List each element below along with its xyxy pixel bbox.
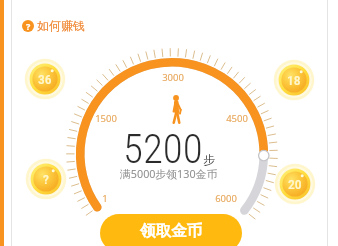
staticText: 20: [288, 176, 302, 192]
staticText: 满5000步领130金币: [120, 166, 218, 181]
staticText: 1: [102, 192, 108, 205]
button[interactable]: 领取金币: [100, 214, 242, 246]
staticText: 领取金币: [140, 221, 203, 241]
button[interactable]: Reward 20: [273, 162, 317, 206]
button[interactable]: Reward 18: [272, 58, 316, 102]
staticText: 3000: [162, 71, 184, 84]
button[interactable]: ?: [21, 17, 86, 34]
staticText: 6000: [215, 192, 237, 205]
staticText: 如何赚钱: [37, 18, 85, 33]
staticText: ?: [43, 171, 49, 187]
staticText: 4500: [226, 112, 248, 125]
staticText: 步: [203, 152, 215, 167]
button[interactable]: Reward ?: [24, 157, 68, 201]
staticText: 18: [287, 72, 301, 88]
staticText: ?: [26, 20, 31, 32]
staticText: 5200: [123, 125, 203, 173]
staticText: 1500: [95, 112, 117, 125]
staticText: 36: [38, 71, 52, 87]
button[interactable]: Reward 36: [23, 57, 67, 101]
